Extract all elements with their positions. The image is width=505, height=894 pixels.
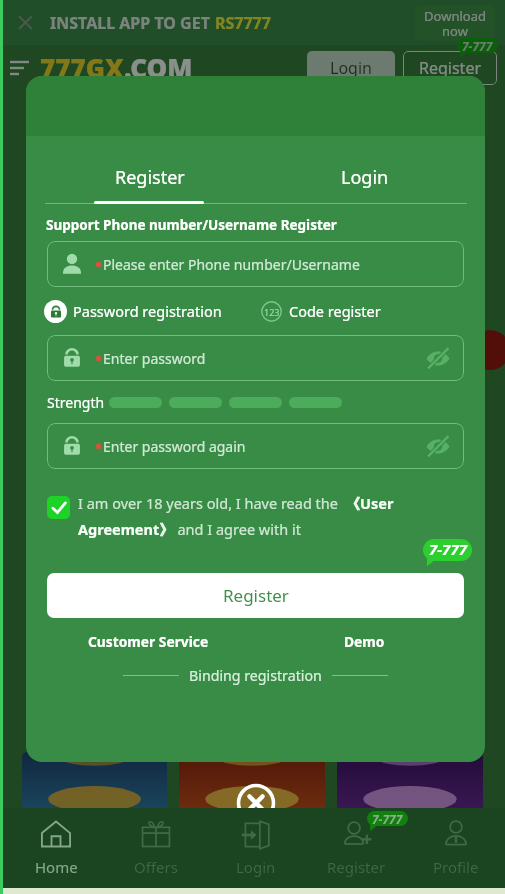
button[interactable]: [337, 752, 483, 814]
button[interactable]: Register: [47, 573, 464, 618]
staticText: Login: [330, 57, 372, 79]
button[interactable]: Register: [403, 51, 497, 85]
button[interactable]: Offers: [106, 808, 206, 888]
staticText: 7-777: [462, 38, 493, 54]
staticText: Register: [419, 57, 482, 79]
button[interactable]: Toggle password visibility: [416, 336, 460, 380]
staticText: INSTALL APP TO GET: [50, 12, 215, 34]
staticText: Register: [327, 857, 386, 877]
staticText: Strength: [47, 393, 105, 412]
staticText: Demo: [344, 632, 385, 651]
button[interactable]: Customer Service: [44, 629, 253, 653]
button[interactable]: Demo: [258, 629, 471, 653]
button[interactable]: Toggle password visibility: [416, 424, 460, 468]
button[interactable]: Binding registration: [189, 666, 322, 685]
button[interactable]: Login: [258, 156, 471, 198]
button[interactable]: Download now: [415, 5, 495, 41]
button[interactable]: Enter password: [47, 335, 464, 381]
staticText: Login: [341, 165, 389, 190]
button[interactable]: [179, 752, 325, 814]
button[interactable]: 123: [261, 299, 381, 323]
button[interactable]: Profile: [406, 808, 505, 888]
staticText: Support Phone number/Username Register: [46, 216, 337, 234]
staticText: Profile: [433, 857, 479, 877]
staticText: Code register: [289, 301, 381, 321]
button[interactable]: Register: [306, 808, 406, 888]
button[interactable]: I am over 18 years old, I have read the …: [47, 493, 467, 539]
staticText: I am over 18 years old, I have read the …: [78, 493, 394, 539]
staticText: Enter password: [103, 349, 206, 368]
staticText: 7-777: [372, 811, 403, 827]
staticText: Password registration: [73, 301, 222, 321]
button[interactable]: Password registration: [44, 299, 222, 323]
button[interactable]: Menu: [0, 45, 40, 90]
staticText: Please enter Phone number/Username: [103, 255, 360, 274]
button[interactable]: Close: [236, 783, 276, 823]
button[interactable]: Enter password again: [47, 423, 464, 469]
staticText: .COM: [124, 50, 193, 85]
staticText: Download now: [424, 7, 486, 40]
staticText: 7-777: [429, 539, 467, 559]
staticText: Login: [236, 857, 276, 877]
button[interactable]: [22, 752, 167, 814]
staticText: Enter password again: [103, 437, 246, 456]
staticText: 777GX: [40, 50, 124, 85]
staticText: Home: [35, 857, 78, 877]
staticText: 123: [264, 306, 280, 318]
staticText: Binding registration: [189, 666, 322, 685]
button[interactable]: Close banner: [0, 0, 50, 45]
button[interactable]: Register: [45, 156, 254, 198]
staticText: Customer Service: [88, 632, 209, 651]
staticText: Register: [115, 165, 185, 190]
button[interactable]: Login: [206, 808, 306, 888]
staticText: RS7777: [215, 12, 271, 34]
button[interactable]: Home: [6, 808, 106, 888]
button[interactable]: Please enter Phone number/Username: [47, 241, 464, 287]
staticText: Offers: [134, 857, 178, 877]
button[interactable]: Login: [307, 51, 395, 85]
staticText: Register: [223, 584, 289, 607]
